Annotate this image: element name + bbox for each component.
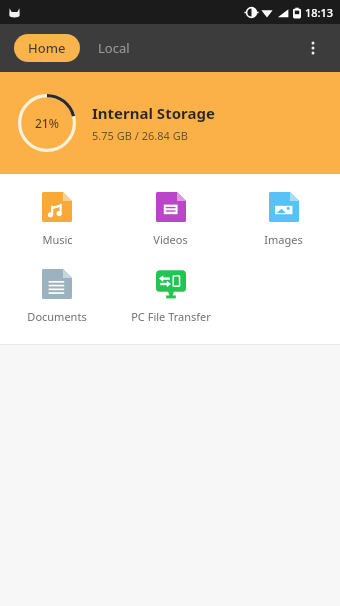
staticText: PC File Transfer — [131, 309, 211, 324]
button[interactable]: PC File Transfer — [114, 263, 227, 330]
button[interactable]: 21% — [0, 72, 340, 174]
staticText: Local — [98, 39, 130, 57]
button[interactable]: More options — [292, 27, 334, 69]
staticText: 5.75 GB / 26.84 GB — [92, 128, 188, 143]
button[interactable]: Home — [14, 34, 80, 62]
staticText: Videos — [153, 232, 188, 247]
staticText: Documents — [27, 309, 87, 324]
staticText: 21% — [35, 115, 59, 131]
staticText: 18:13 — [305, 5, 334, 20]
button[interactable]: Local — [86, 34, 142, 62]
staticText: Home — [28, 39, 66, 57]
button[interactable]: Images — [227, 186, 340, 253]
button[interactable]: Documents — [0, 263, 114, 330]
button[interactable]: Music — [0, 186, 114, 253]
staticText: Music — [42, 232, 73, 247]
staticText: Images — [264, 232, 303, 247]
staticText: Internal Storage — [92, 103, 215, 123]
button[interactable]: Videos — [114, 186, 227, 253]
